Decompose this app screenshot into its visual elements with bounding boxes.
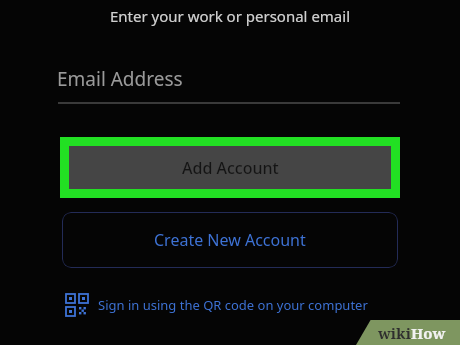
other: QR code sign in [66, 294, 88, 316]
button[interactable]: QR code sign in [66, 290, 368, 320]
staticText: Sign in using the QR code on your comput… [98, 296, 368, 314]
staticText: wiki [378, 323, 411, 343]
staticText: Email Address [57, 66, 183, 92]
staticText: How [411, 323, 446, 343]
staticText: Add Account [182, 157, 279, 179]
button[interactable]: Add Account [69, 146, 391, 189]
button[interactable]: Create New Account [62, 212, 398, 268]
staticText: Create New Account [154, 229, 306, 251]
staticText: Enter your work or personal email [0, 6, 460, 26]
